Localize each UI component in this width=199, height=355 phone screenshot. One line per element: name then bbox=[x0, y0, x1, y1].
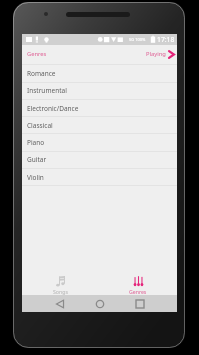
button[interactable]: Classical bbox=[22, 117, 177, 134]
button[interactable]: Playing bbox=[142, 44, 177, 64]
staticText: Songs bbox=[53, 288, 68, 295]
button[interactable]: Recents bbox=[132, 296, 148, 312]
button[interactable]: Romance bbox=[22, 65, 177, 82]
button[interactable]: Electronic/Dance bbox=[22, 100, 177, 117]
staticText: Romance bbox=[27, 69, 56, 78]
button[interactable]: Genres bbox=[22, 44, 52, 64]
staticText: Piano bbox=[27, 138, 45, 147]
button[interactable]: Songs bbox=[22, 268, 99, 295]
staticText: Classical bbox=[27, 121, 53, 130]
button[interactable]: Violin bbox=[22, 169, 177, 186]
staticText: Playing bbox=[146, 50, 166, 58]
button[interactable]: Guitar bbox=[22, 151, 177, 168]
button[interactable]: Home bbox=[92, 296, 108, 312]
staticText: Electronic/Dance bbox=[27, 104, 79, 113]
staticText: 5G 100% bbox=[129, 37, 146, 42]
staticText: Genres bbox=[27, 50, 47, 58]
staticText: Violin bbox=[27, 173, 44, 182]
staticText: Guitar bbox=[27, 155, 47, 164]
button[interactable]: Piano bbox=[22, 134, 177, 151]
button[interactable]: Genres bbox=[99, 268, 177, 295]
staticText: Genres bbox=[129, 288, 147, 295]
staticText: 17:18 bbox=[157, 35, 175, 44]
button[interactable]: Back bbox=[52, 296, 68, 312]
button[interactable]: Instrumental bbox=[22, 82, 177, 99]
staticText: Instrumental bbox=[27, 86, 67, 95]
